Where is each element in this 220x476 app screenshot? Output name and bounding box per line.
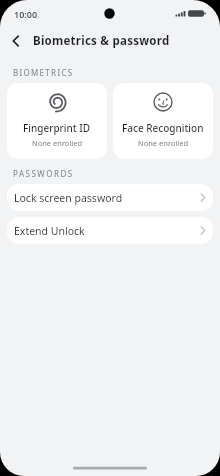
staticText: Fingerprint ID bbox=[23, 121, 91, 135]
staticText: Biometrics & password bbox=[33, 33, 170, 49]
button[interactable]: Fingerprint ID bbox=[7, 83, 107, 159]
staticText: None enrolled bbox=[32, 138, 83, 148]
staticText: PASSWORDS bbox=[13, 168, 74, 179]
staticText: Extend Unlock bbox=[14, 224, 85, 238]
staticText: Lock screen password bbox=[14, 191, 123, 205]
button[interactable]: Lock screen password bbox=[7, 184, 213, 211]
staticText: BIOMETRICS bbox=[13, 67, 74, 78]
staticText: None enrolled bbox=[138, 138, 189, 148]
button[interactable] bbox=[8, 28, 24, 54]
staticText: Face Recognition bbox=[122, 121, 204, 135]
staticText: 10:00 bbox=[14, 8, 38, 20]
button[interactable]: Face Recognition bbox=[113, 83, 213, 159]
button[interactable]: Extend Unlock bbox=[7, 217, 213, 244]
